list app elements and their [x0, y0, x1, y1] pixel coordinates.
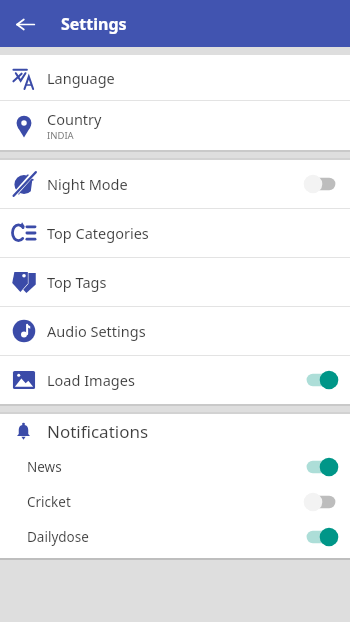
staticText: Language — [47, 68, 115, 88]
staticText: Settings — [61, 13, 127, 35]
button[interactable]: Load Images — [0, 356, 350, 404]
staticText: Country — [47, 109, 102, 129]
button[interactable]: Enabled — [303, 370, 339, 390]
button[interactable]: Top Tags — [0, 258, 350, 306]
staticText: Top Categories — [47, 223, 149, 243]
button[interactable]: Back — [9, 8, 41, 40]
button[interactable]: Enabled — [303, 457, 339, 477]
staticText: Cricket — [27, 493, 303, 511]
button[interactable]: Disabled — [303, 174, 339, 194]
button[interactable]: Country — [0, 101, 350, 150]
button[interactable]: Language — [0, 55, 350, 100]
button[interactable]: Enabled — [303, 527, 339, 547]
button[interactable]: Dailydose — [0, 519, 350, 554]
staticText: INDIA — [47, 129, 74, 142]
button[interactable]: Night Mode — [0, 160, 350, 208]
button[interactable]: Top Categories — [0, 209, 350, 257]
staticText: Dailydose — [27, 528, 303, 546]
button[interactable]: Audio Settings — [0, 307, 350, 355]
staticText: Audio Settings — [47, 321, 146, 341]
staticText: News — [27, 458, 303, 476]
button[interactable]: Cricket — [0, 484, 350, 519]
button[interactable]: News — [0, 449, 350, 484]
staticText: Top Tags — [47, 272, 107, 292]
staticText: Night Mode — [47, 174, 128, 194]
staticText: Load Images — [47, 370, 135, 390]
staticText: Notifications — [47, 420, 149, 443]
button[interactable]: Disabled — [303, 492, 339, 512]
